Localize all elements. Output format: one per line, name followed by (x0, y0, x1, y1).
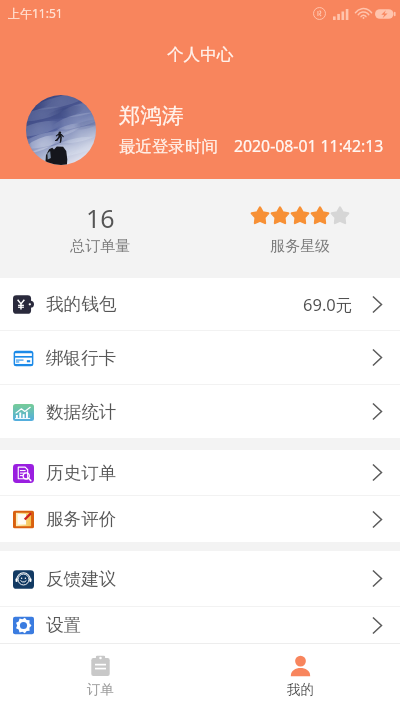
button[interactable]: 绑银行卡 (0, 331, 400, 384)
staticText: 数据统计 (46, 401, 117, 423)
staticText: 服务评价 (46, 508, 117, 530)
button[interactable]: 服务评价 (0, 496, 400, 542)
staticText: 历史订单 (46, 462, 117, 484)
staticText: 总订单量 (70, 237, 130, 256)
staticText: 最近登录时间 (119, 136, 218, 157)
staticText: 郑鸿涛 (119, 102, 184, 129)
button[interactable]: 我的 (200, 643, 400, 710)
button[interactable]: 反馈建议 (0, 551, 400, 606)
staticText: 个人中心 (167, 44, 234, 65)
staticText: 我的钱包 (46, 293, 117, 315)
staticText: 反馈建议 (46, 568, 117, 590)
staticText: 2020-08-01 11:42:13 (234, 135, 384, 157)
staticText: 我的 (287, 681, 314, 698)
staticText: 上午11:51 (8, 5, 63, 21)
button[interactable]: 订单 (0, 643, 200, 710)
staticText: 设置 (46, 614, 82, 636)
button[interactable]: 设置 (0, 607, 400, 643)
staticText: 16 (86, 201, 115, 235)
staticText: 69.0元 (303, 293, 353, 316)
button[interactable]: 我的钱包 (0, 278, 400, 330)
staticText: 订单 (87, 681, 114, 698)
staticText: 绑银行卡 (46, 347, 117, 369)
staticText: 服务星级 (270, 237, 330, 256)
button[interactable]: 数据统计 (0, 385, 400, 438)
button[interactable]: 历史订单 (0, 450, 400, 495)
